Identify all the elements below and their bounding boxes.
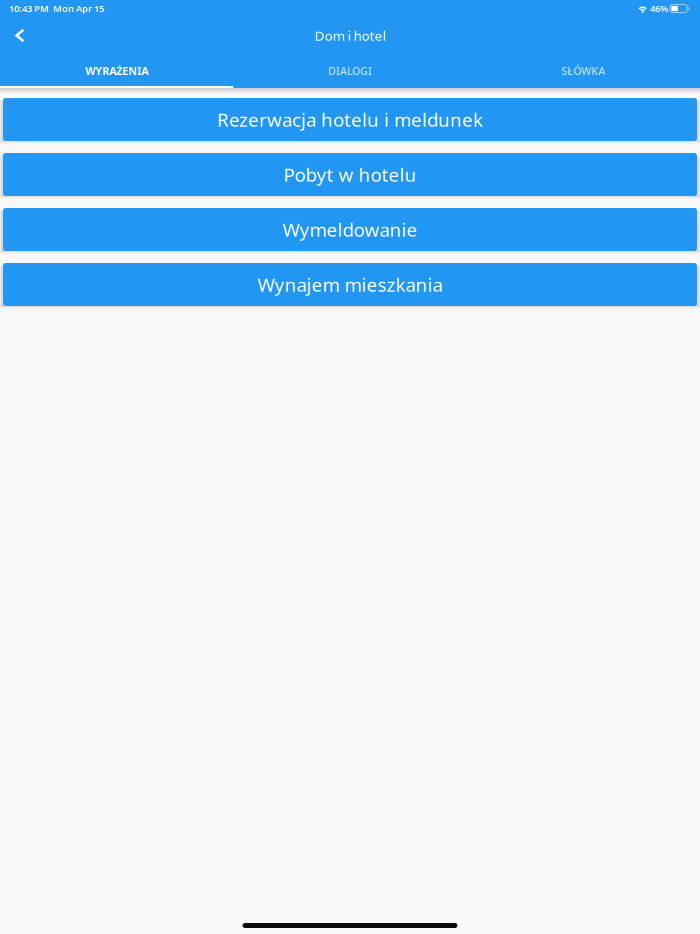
staticText: Mon Apr 15 bbox=[49, 2, 104, 15]
staticText: Wymeldowanie bbox=[282, 217, 417, 242]
button[interactable]: Pobyt w hotelu bbox=[0, 153, 700, 199]
button[interactable]: WYRAŻENIA bbox=[0, 52, 233, 88]
staticText: SŁÓWKA bbox=[561, 64, 605, 78]
staticText: 46% bbox=[648, 2, 670, 15]
button[interactable]: DIALOGI bbox=[233, 52, 467, 88]
staticText: WYRAŻENIA bbox=[85, 64, 148, 78]
staticText: 10:43 PM bbox=[9, 2, 49, 15]
staticText: Pobyt w hotelu bbox=[283, 162, 416, 187]
staticText: Dom i hotel bbox=[314, 27, 385, 44]
button[interactable]: Rezerwacja hotelu i meldunek bbox=[0, 98, 700, 144]
button[interactable]: SŁÓWKA bbox=[467, 52, 700, 88]
button[interactable]: Wymeldowanie bbox=[0, 208, 700, 254]
staticText: Rezerwacja hotelu i meldunek bbox=[217, 107, 483, 132]
staticText: DIALOGI bbox=[328, 64, 372, 78]
button[interactable]: Back bbox=[0, 19, 40, 52]
staticText: Wynajem mieszkania bbox=[257, 272, 442, 297]
button[interactable]: Wynajem mieszkania bbox=[0, 263, 700, 309]
